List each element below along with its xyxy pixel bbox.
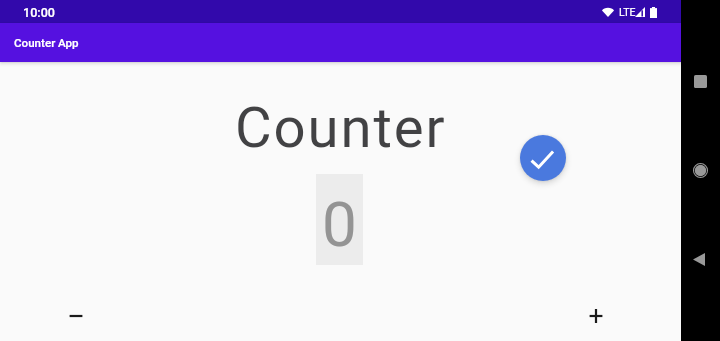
staticText: LTE [619, 6, 636, 18]
staticText: 10:00 [23, 5, 55, 20]
button[interactable]: Home [688, 158, 713, 183]
button[interactable]: Back [686, 247, 711, 272]
button[interactable]: Increment [572, 292, 620, 340]
button[interactable]: Done [520, 135, 566, 181]
staticText: Counter [235, 95, 447, 161]
button[interactable]: Recents [688, 69, 713, 94]
staticText: 0 [322, 188, 357, 261]
staticText: Counter App [14, 36, 79, 50]
button[interactable]: Decrement [52, 292, 100, 340]
